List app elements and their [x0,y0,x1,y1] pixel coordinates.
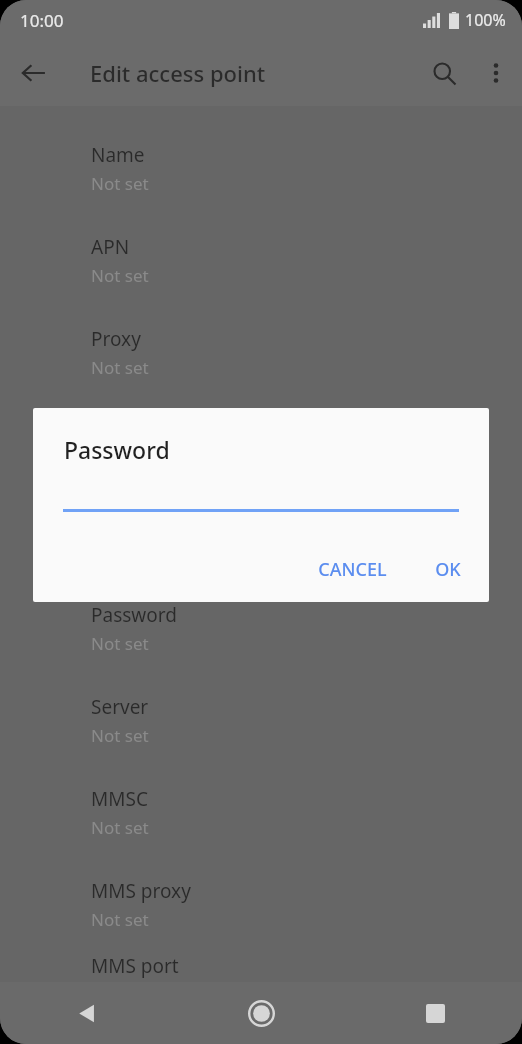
staticText: Server [91,694,149,720]
staticText: 100% [465,9,506,31]
staticText: Not set [91,816,149,839]
staticText: Not set [91,448,149,471]
staticText: Username [91,510,184,536]
button[interactable]: Proxy [0,306,522,398]
button[interactable]: Username [0,490,522,582]
button[interactable]: APN [0,214,522,306]
button[interactable]: Password [0,582,522,674]
staticText: Proxy [91,326,141,352]
button[interactable]: Back [0,982,174,1044]
button[interactable]: MMS port [0,950,522,982]
button[interactable]: Server [0,674,522,766]
button[interactable]: More options [470,47,522,99]
button[interactable]: Back [8,47,60,99]
button[interactable]: MMS proxy [0,858,522,950]
button[interactable]: Recent apps [348,982,522,1044]
button[interactable]: Search [418,47,470,99]
staticText: OK [435,557,461,582]
button[interactable]: Name [0,122,522,214]
button[interactable]: OK [421,547,475,592]
staticText: Password [64,434,170,465]
button[interactable]: MMSC [0,766,522,858]
button[interactable]: CANCEL [304,547,401,592]
button[interactable]: Home [174,982,348,1044]
button[interactable]: Port [0,398,522,490]
staticText: Name [91,142,145,168]
staticText: APN [91,234,130,260]
staticText: Not set [91,264,149,287]
staticText: 10:00 [20,9,64,32]
staticText: MMS proxy [91,878,191,904]
staticText: Not set [91,172,149,195]
staticText: Not set [91,356,149,379]
staticText: CANCEL [318,557,387,582]
staticText: Password [91,602,177,628]
staticText: MMS port [91,953,179,979]
staticText: Not set [91,632,149,655]
staticText: Not set [91,908,149,931]
staticText: Not set [91,724,149,747]
staticText: Edit access point [90,58,266,88]
staticText: MMSC [91,786,148,812]
